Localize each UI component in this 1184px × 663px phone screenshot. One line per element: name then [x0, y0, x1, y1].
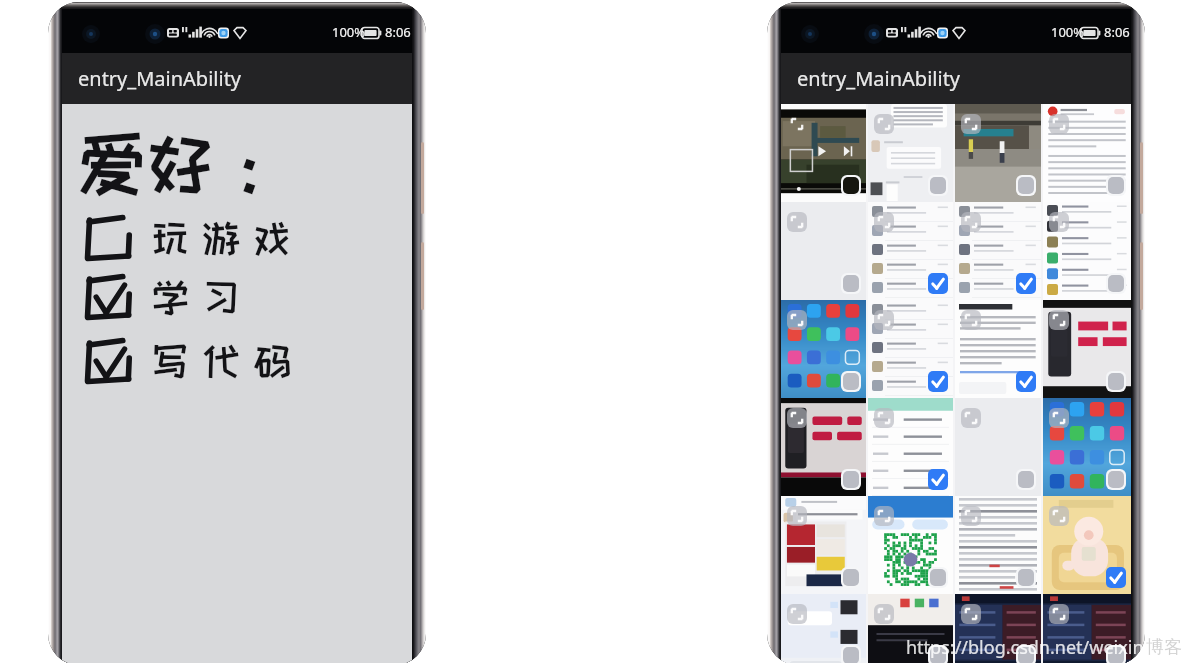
- staticText: 8:06: [1104, 23, 1130, 41]
- staticText: https://blog.csdn.net/weixin_42067: [906, 635, 1184, 660]
- button[interactable]: [955, 496, 1041, 594]
- staticText: entry_MainAbility: [797, 65, 961, 92]
- button[interactable]: [868, 496, 953, 594]
- button[interactable]: [781, 398, 866, 496]
- button[interactable]: [1043, 398, 1131, 496]
- button[interactable]: [1043, 594, 1131, 663]
- button[interactable]: [868, 202, 953, 300]
- staticText: 100%: [1051, 23, 1085, 41]
- staticText: 学习: [152, 277, 254, 317]
- button[interactable]: [955, 594, 1041, 663]
- button[interactable]: [781, 496, 866, 594]
- button[interactable]: [1043, 202, 1131, 300]
- staticText: 博客: [1146, 636, 1182, 659]
- button[interactable]: [868, 300, 953, 398]
- button[interactable]: [955, 300, 1041, 398]
- button[interactable]: [955, 398, 1041, 496]
- button[interactable]: [1043, 496, 1131, 594]
- button[interactable]: [781, 202, 866, 300]
- button[interactable]: [955, 202, 1041, 300]
- staticText: 玩游戏: [152, 218, 305, 258]
- staticText: entry_MainAbility: [78, 65, 242, 92]
- staticText: 爱好：: [77, 126, 285, 200]
- button[interactable]: 学习: [62, 271, 412, 327]
- button[interactable]: [1043, 104, 1131, 202]
- button[interactable]: 写代码: [62, 335, 412, 391]
- button[interactable]: [781, 104, 866, 202]
- staticText: 写代码: [152, 341, 305, 381]
- button[interactable]: [781, 300, 866, 398]
- button[interactable]: 玩游戏: [62, 212, 412, 268]
- staticText: 100%: [332, 23, 366, 41]
- button[interactable]: [868, 104, 953, 202]
- button[interactable]: [781, 594, 866, 663]
- button[interactable]: [1043, 300, 1131, 398]
- button[interactable]: [868, 398, 953, 496]
- staticText: 8:06: [385, 23, 411, 41]
- button[interactable]: [868, 594, 953, 663]
- button[interactable]: [955, 104, 1041, 202]
